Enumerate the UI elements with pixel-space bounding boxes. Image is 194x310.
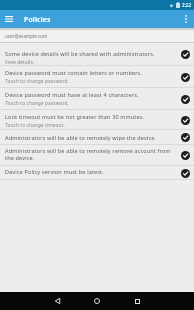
button[interactable] [37, 292, 77, 310]
button[interactable] [117, 292, 157, 310]
staticText: Touch to change timeout. [5, 122, 65, 129]
button[interactable]: Some device details will be shared with … [0, 43, 194, 66]
button[interactable]: Administrators will be able to remotely … [0, 130, 194, 145]
staticText: Policies [24, 15, 51, 24]
staticText: Administrators will be able to remotely … [5, 134, 157, 141]
button[interactable]: Lock timeout must be not greater than 30… [0, 110, 194, 130]
staticText: Device password must have at least 4 cha… [5, 91, 139, 98]
staticText: Touch to change password. [5, 100, 69, 107]
button[interactable]: Device password must have at least 4 cha… [0, 88, 194, 110]
staticText: user@example.com [5, 33, 48, 39]
button[interactable]: Device Policy version must be latest. [0, 166, 194, 180]
staticText: Lock timeout must be not greater than 30… [5, 113, 145, 120]
staticText: Some device details will be shared with … [5, 50, 155, 57]
staticText: Device Policy version must be latest. [5, 168, 104, 175]
button[interactable]: Administrators will be able to remotely … [0, 145, 194, 166]
button[interactable] [178, 10, 194, 28]
button[interactable] [77, 292, 117, 310]
staticText: 2:22 [182, 2, 192, 8]
button[interactable] [0, 10, 18, 28]
staticText: View details. [5, 59, 35, 66]
staticText: Administrators will be able to remotely … [5, 147, 175, 161]
button[interactable]: Device password must contain letters or … [0, 66, 194, 88]
staticText: Touch to change password. [5, 78, 69, 85]
staticText: Device password must contain letters or … [5, 69, 142, 76]
